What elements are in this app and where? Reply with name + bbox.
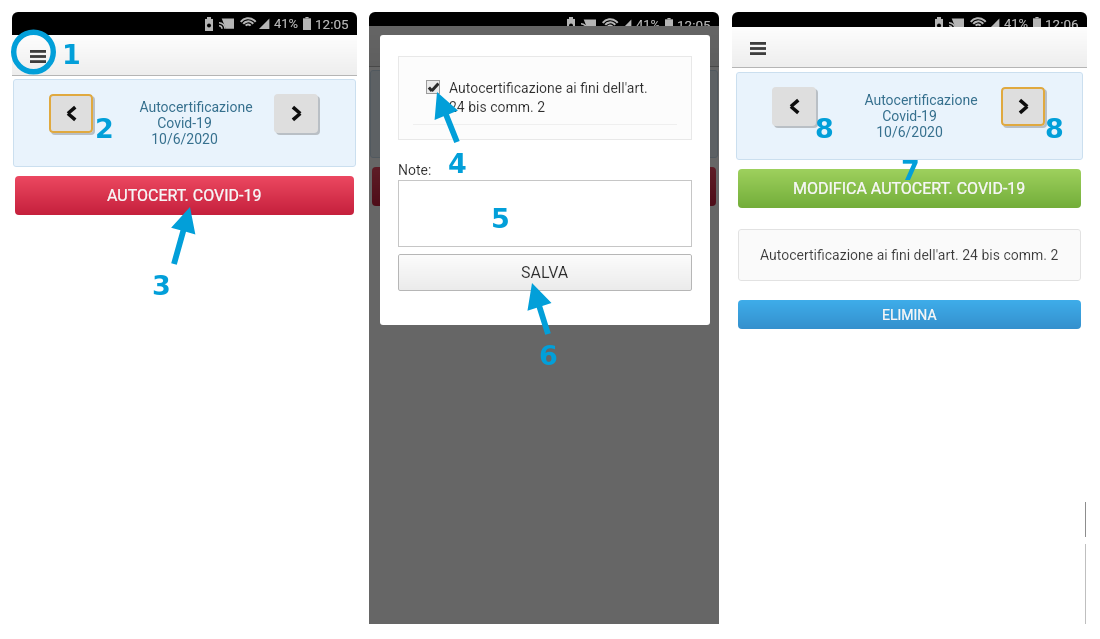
staticText: Covid-19 (882, 108, 937, 124)
staticText: AUTOCERT. COVID-19 (467, 177, 622, 196)
button[interactable]: Autocertificazione checkbox (426, 80, 440, 94)
staticText: 41% (274, 16, 299, 31)
button[interactable]: Next day (1001, 87, 1045, 126)
staticText: 8 (815, 113, 834, 144)
staticText: 12:05 (677, 17, 711, 26)
staticText: SALVA (521, 263, 569, 282)
staticText: 10/6/2020 (511, 122, 578, 138)
button[interactable]: ELIMINA (738, 300, 1081, 329)
button[interactable]: Next day (274, 94, 318, 133)
staticText: 10/6/2020 (151, 131, 218, 147)
button[interactable]: MODIFICA AUTOCERT. COVID-19 (738, 169, 1081, 208)
staticText: 7 (901, 155, 920, 186)
staticText: 1 (62, 39, 81, 70)
staticText: Covid-19 (517, 106, 572, 122)
staticText: 8 (1045, 113, 1064, 144)
staticText: 3 (152, 270, 171, 301)
staticText: 4 (448, 148, 467, 179)
staticText: 12:06 (1045, 16, 1079, 27)
button[interactable]: AUTOCERT. COVID-19 (372, 167, 716, 206)
button[interactable]: SALVA (398, 254, 692, 291)
button[interactable]: AUTOCERT. COVID-19 (15, 176, 354, 215)
staticText: Autocertificazione (498, 90, 612, 106)
button[interactable]: Next day (636, 85, 680, 124)
staticText: 41% (636, 17, 661, 26)
staticText: Note: (398, 162, 432, 178)
button[interactable]: Open navigation menu (743, 35, 773, 61)
staticText: 2 (95, 113, 114, 144)
staticText: Autocertificazione (139, 99, 253, 115)
staticText: Autocertificazione ai fini dell'art. 24 … (760, 247, 1059, 263)
staticText: Autocertificazione ai fini dell'art. 24 … (449, 80, 648, 116)
button[interactable]: Open navigation menu (380, 34, 410, 60)
staticText: 5 (491, 203, 510, 234)
button[interactable]: Previous day (49, 94, 93, 133)
button[interactable]: Previous day (406, 85, 450, 124)
staticText: 10/6/2020 (876, 124, 943, 140)
staticText: ELIMINA (882, 307, 937, 323)
staticText: 12:05 (315, 16, 349, 32)
staticText: Autocertificazione (864, 92, 978, 108)
button[interactable]: Open navigation menu (23, 43, 53, 69)
staticText: 6 (539, 340, 558, 371)
staticText: MODIFICA AUTOCERT. COVID-19 (793, 179, 1026, 198)
staticText: 41% (1004, 16, 1029, 27)
button[interactable]: Previous day (772, 87, 816, 126)
staticText: AUTOCERT. COVID-19 (107, 186, 262, 205)
staticText: Covid-19 (157, 115, 212, 131)
